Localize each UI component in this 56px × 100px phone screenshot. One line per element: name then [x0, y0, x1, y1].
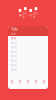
- staticText: abcd: [11, 63, 17, 67]
- staticText: Title: [11, 26, 18, 32]
- staticText: ddd: [33, 12, 38, 19]
- staticText: abcd: [11, 59, 17, 62]
- button[interactable]: abcd: [8, 54, 48, 58]
- button[interactable]: aaa: [17, 9, 23, 17]
- staticText: abcd: [11, 54, 17, 58]
- staticText: abcd: [11, 45, 17, 49]
- staticText: abcd: [11, 68, 17, 71]
- staticText: sub: [11, 32, 16, 36]
- button[interactable]: Tab: [8, 80, 16, 84]
- button[interactable]: Tab: [24, 80, 32, 84]
- button[interactable]: Tab: [32, 80, 40, 84]
- button[interactable]: ccc: [28, 9, 33, 17]
- button[interactable]: abcd: [8, 67, 48, 72]
- button[interactable]: abcd: [8, 45, 48, 49]
- button[interactable]: bbb: [23, 7, 28, 19]
- staticText: ccc: [29, 13, 32, 17]
- staticText: aaa: [18, 13, 21, 17]
- staticText: bbb: [23, 12, 28, 19]
- staticText: abcd: [11, 41, 17, 44]
- button[interactable]: abcd: [8, 49, 48, 54]
- staticText: Sect: [11, 36, 16, 40]
- button[interactable]: Tab: [16, 80, 24, 84]
- button[interactable]: ddd: [33, 7, 39, 19]
- staticText: abcd: [11, 50, 17, 53]
- button[interactable]: abcd: [8, 63, 48, 67]
- button[interactable]: Tab: [40, 80, 48, 84]
- button[interactable]: Sect: [8, 36, 48, 40]
- button[interactable]: abcd: [8, 58, 48, 63]
- button[interactable]: abcd: [8, 40, 48, 45]
